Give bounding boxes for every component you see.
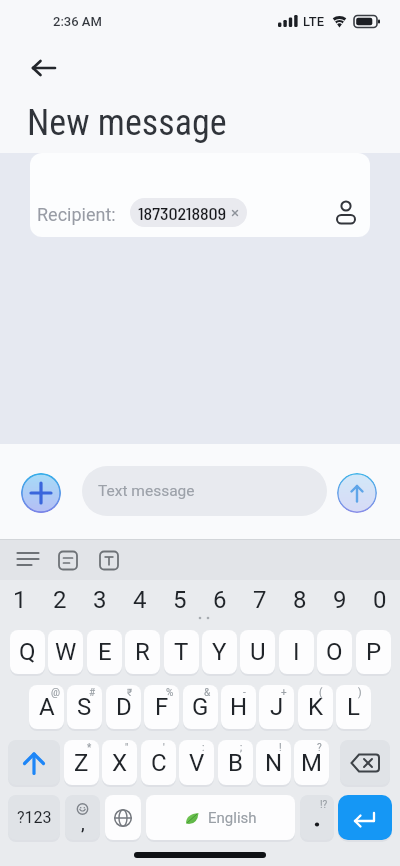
- button[interactable]: 5: [160, 579, 200, 621]
- staticText: Text message: [98, 482, 195, 500]
- staticText: !: [279, 742, 282, 754]
- button[interactable]: X: [102, 740, 137, 785]
- staticText: LTE: [303, 14, 324, 29]
- button[interactable]: [24, 54, 64, 84]
- button[interactable]: [337, 473, 377, 513]
- staticText: T: [174, 638, 189, 666]
- button[interactable]: W: [48, 630, 83, 674]
- staticText: 4: [133, 586, 147, 614]
- button[interactable]: [338, 795, 392, 840]
- staticText: 1: [13, 586, 27, 614]
- staticText: J: [270, 693, 284, 721]
- staticText: C: [151, 749, 167, 777]
- staticText: New message: [27, 102, 227, 144]
- staticText: !?: [320, 799, 328, 811]
- button[interactable]: H: [221, 685, 256, 729]
- staticText: 2: [53, 586, 67, 614]
- button[interactable]: Y: [202, 630, 237, 674]
- button[interactable]: [12, 550, 44, 572]
- staticText: ;: [240, 742, 243, 754]
- staticText: (: [319, 687, 323, 699]
- staticText: P: [366, 638, 382, 666]
- button[interactable]: L: [336, 685, 371, 729]
- staticText: B: [228, 749, 243, 777]
- staticText: N: [265, 749, 283, 777]
- staticText: D: [116, 693, 132, 721]
- button[interactable]: [300, 795, 334, 840]
- staticText: F: [155, 693, 169, 721]
- button[interactable]: 7: [240, 579, 280, 621]
- button[interactable]: G: [183, 685, 218, 729]
- button[interactable]: 0: [360, 579, 400, 621]
- staticText: ': [163, 742, 165, 754]
- staticText: 6: [213, 586, 227, 614]
- staticText: G: [192, 693, 209, 721]
- staticText: O: [326, 638, 343, 666]
- staticText: V: [189, 749, 205, 777]
- button[interactable]: ,: [65, 795, 100, 840]
- staticText: M: [301, 749, 322, 777]
- staticText: Q: [19, 638, 36, 666]
- button[interactable]: English: [146, 795, 295, 840]
- staticText: H: [230, 693, 248, 721]
- staticText: +: [281, 687, 287, 699]
- button[interactable]: 3: [80, 579, 120, 621]
- button[interactable]: J: [259, 685, 294, 729]
- button[interactable]: Text message: [82, 466, 327, 516]
- button[interactable]: C: [141, 740, 176, 785]
- button[interactable]: Z: [64, 740, 99, 785]
- staticText: ?: [317, 742, 322, 754]
- button[interactable]: [21, 473, 61, 513]
- button[interactable]: [8, 740, 60, 785]
- button[interactable]: D: [106, 685, 141, 729]
- staticText: I: [293, 638, 300, 666]
- button[interactable]: M: [294, 740, 329, 785]
- button[interactable]: 8: [280, 579, 320, 621]
- button[interactable]: 2: [40, 579, 80, 621]
- button[interactable]: [105, 795, 141, 840]
- staticText: 7: [253, 586, 267, 614]
- staticText: A: [39, 693, 55, 721]
- staticText: U: [250, 638, 266, 666]
- staticText: Z: [74, 749, 89, 777]
- button[interactable]: K: [298, 685, 333, 729]
- staticText: #: [89, 687, 96, 699]
- button[interactable]: B: [218, 740, 253, 785]
- staticText: R: [135, 638, 150, 666]
- staticText: ₹: [127, 687, 133, 699]
- staticText: ": [125, 742, 129, 754]
- button[interactable]: T: [164, 630, 199, 674]
- staticText: ?123: [17, 808, 52, 827]
- button[interactable]: O: [317, 630, 352, 674]
- button[interactable]: 4: [120, 579, 160, 621]
- staticText: @: [51, 687, 60, 699]
- staticText: 5: [173, 586, 187, 614]
- button[interactable]: [93, 550, 125, 572]
- button[interactable]: 18730218809: [130, 198, 247, 227]
- staticText: ,: [81, 814, 85, 834]
- button[interactable]: E: [87, 630, 122, 674]
- button[interactable]: 1: [0, 579, 40, 621]
- staticText: English: [208, 809, 257, 827]
- button[interactable]: R: [125, 630, 160, 674]
- button[interactable]: Q: [10, 630, 45, 674]
- button[interactable]: 6: [200, 579, 240, 621]
- staticText: W: [55, 638, 77, 666]
- button[interactable]: [52, 550, 84, 572]
- button[interactable]: V: [179, 740, 214, 785]
- button[interactable]: [328, 195, 364, 231]
- button[interactable]: ?123: [8, 795, 60, 840]
- button[interactable]: P: [356, 630, 391, 674]
- staticText: 2:36 AM: [53, 14, 102, 29]
- button[interactable]: I: [279, 630, 314, 674]
- button[interactable]: S: [67, 685, 102, 729]
- button[interactable]: A: [29, 685, 64, 729]
- button[interactable]: F: [144, 685, 179, 729]
- button[interactable]: 9: [320, 579, 360, 621]
- staticText: ): [358, 687, 362, 699]
- button[interactable]: U: [240, 630, 275, 674]
- staticText: :: [202, 742, 205, 754]
- button[interactable]: N: [256, 740, 291, 785]
- staticText: *: [87, 742, 92, 754]
- button[interactable]: [340, 740, 390, 785]
